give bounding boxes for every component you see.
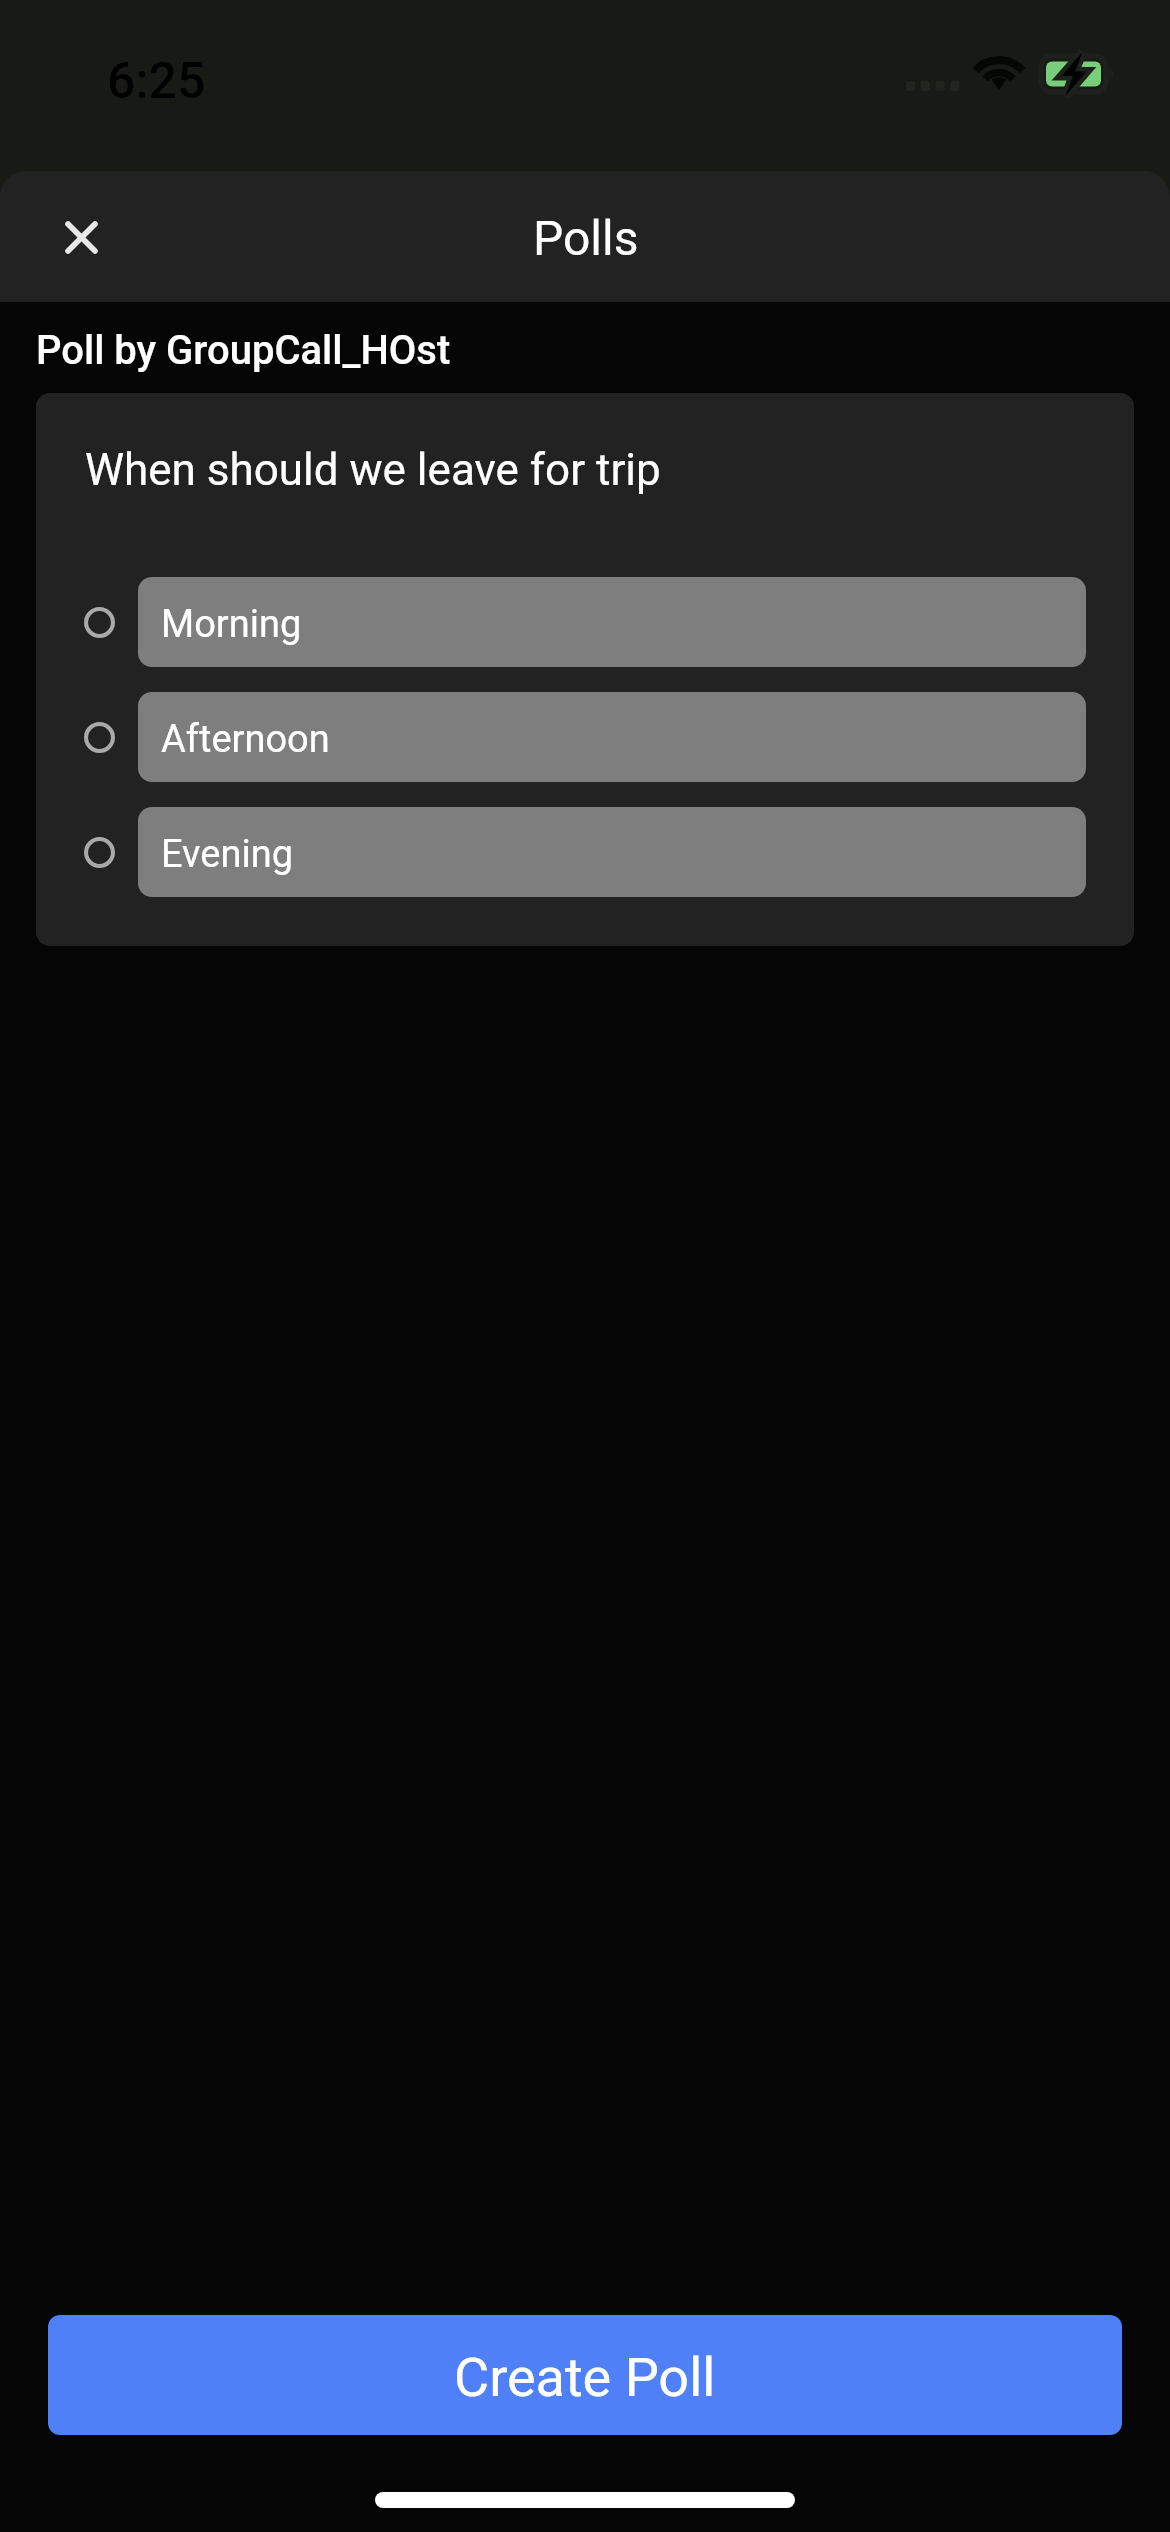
staticText: Evening	[161, 832, 293, 877]
staticText: When should we leave for trip	[85, 444, 661, 496]
button[interactable]: Evening	[36, 807, 1134, 897]
staticText: 6:25	[107, 52, 206, 111]
button[interactable]: Afternoon	[36, 692, 1134, 782]
button[interactable]: Close	[45, 201, 117, 273]
staticText: Polls	[533, 210, 639, 266]
staticText: Morning	[161, 602, 302, 647]
staticText: Create Poll	[454, 2346, 716, 2409]
button[interactable]: Create Poll	[48, 2315, 1122, 2435]
button[interactable]: Morning	[36, 577, 1134, 667]
staticText: Afternoon	[161, 717, 330, 762]
staticText: Poll by GroupCall_HOst	[36, 327, 451, 374]
